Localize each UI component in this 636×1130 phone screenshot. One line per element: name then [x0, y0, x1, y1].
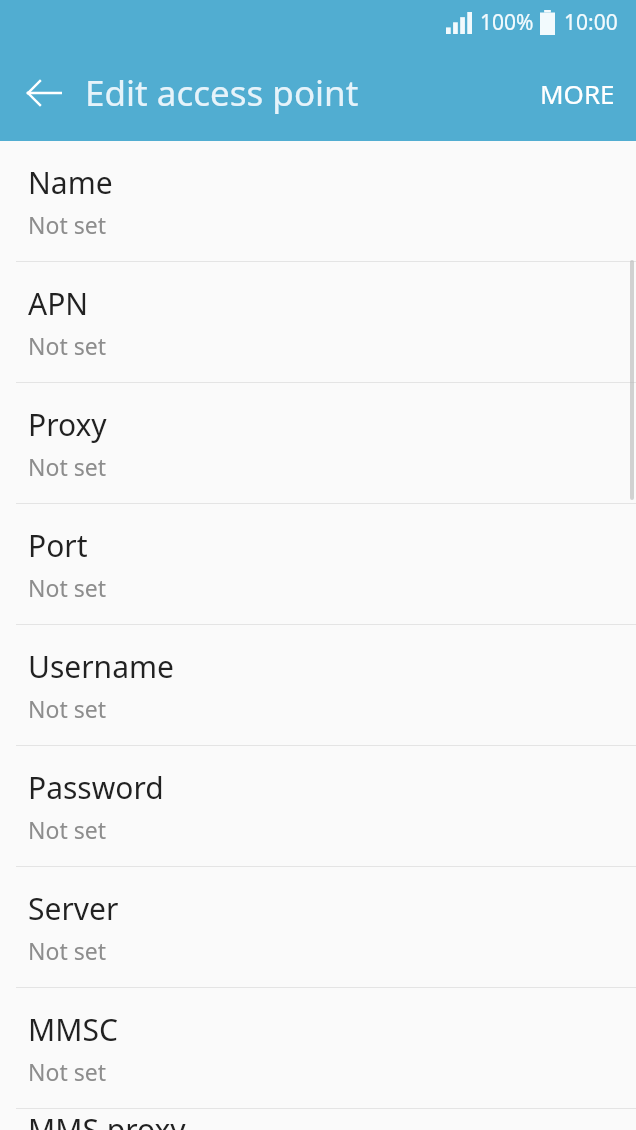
staticText: MORE: [540, 76, 615, 111]
button[interactable]: Port: [0, 504, 636, 624]
staticText: Not set: [28, 209, 106, 240]
button[interactable]: MMS proxy: [0, 1109, 636, 1130]
staticText: Not set: [28, 1056, 106, 1087]
staticText: APN: [28, 283, 89, 324]
staticText: Not set: [28, 572, 106, 603]
staticText: Proxy: [28, 404, 107, 445]
button[interactable]: Username: [0, 625, 636, 745]
staticText: Not set: [28, 451, 106, 482]
button[interactable]: Proxy: [0, 383, 636, 503]
staticText: MMSC: [28, 1009, 118, 1050]
staticText: Username: [28, 646, 174, 687]
staticText: Server: [28, 888, 119, 929]
button[interactable]: APN: [0, 262, 636, 382]
staticText: Edit access point: [85, 69, 359, 117]
staticText: MMS proxy: [28, 1109, 186, 1130]
staticText: Not set: [28, 330, 106, 361]
button[interactable]: Server: [0, 867, 636, 987]
staticText: 100%: [480, 8, 534, 37]
staticText: Not set: [28, 693, 106, 724]
staticText: Port: [28, 525, 88, 566]
staticText: Password: [28, 767, 164, 808]
button[interactable]: Password: [0, 746, 636, 866]
button[interactable]: Navigate up: [12, 61, 76, 125]
staticText: Not set: [28, 814, 106, 845]
staticText: 10:00: [564, 8, 618, 37]
button[interactable]: MORE: [527, 62, 628, 125]
staticText: Name: [28, 162, 113, 203]
staticText: Not set: [28, 935, 106, 966]
button[interactable]: Name: [0, 141, 636, 261]
button[interactable]: MMSC: [0, 988, 636, 1108]
